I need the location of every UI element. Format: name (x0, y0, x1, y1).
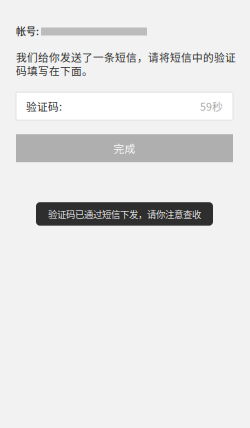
staticText: 我们给你发送了一条短信，请将短信中的验证码填写在下面。 (16, 50, 236, 77)
staticText: 帐号: (16, 24, 39, 38)
staticText: 59秒 (200, 98, 223, 114)
staticText: 完成 (113, 140, 135, 156)
button[interactable]: 验证码: (16, 92, 233, 120)
staticText: 验证码: (26, 98, 62, 114)
button[interactable]: 完成 (16, 134, 233, 162)
staticText: 验证码已通过短信下发，请你注意查收 (48, 207, 201, 221)
